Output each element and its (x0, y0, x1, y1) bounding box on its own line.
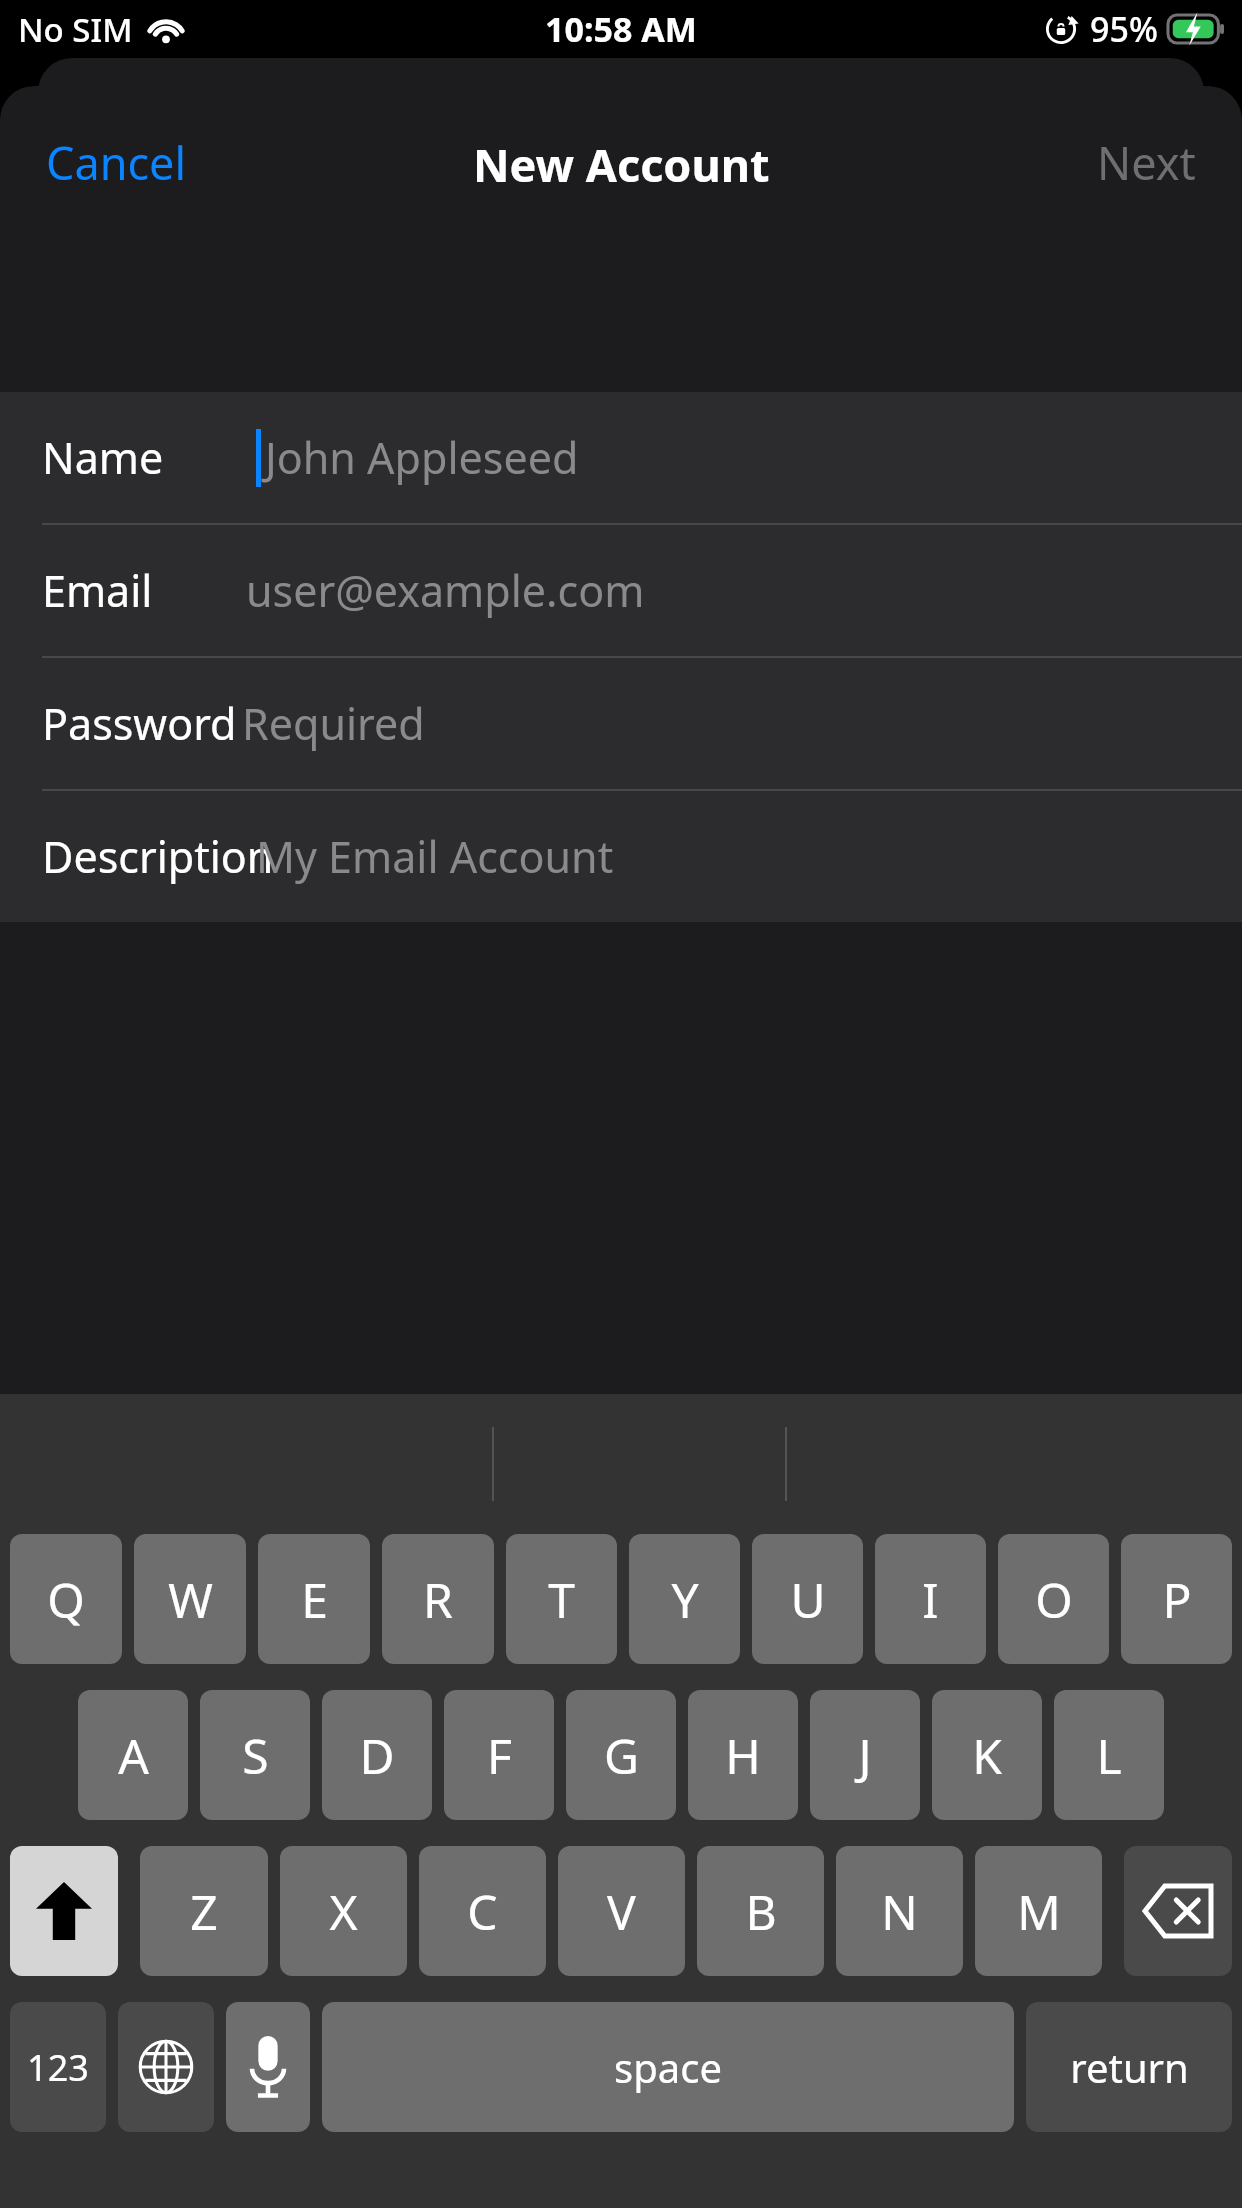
staticText: Z (190, 1879, 218, 1944)
button[interactable]: W (134, 1534, 246, 1664)
staticText: My Email Account (256, 827, 614, 886)
staticText: No SIM (18, 7, 133, 52)
staticText: T (548, 1567, 575, 1632)
button[interactable]: C (419, 1846, 546, 1976)
button[interactable]: Shift (10, 1846, 118, 1976)
button[interactable]: Backspace (1124, 1846, 1232, 1976)
staticText: M (1017, 1879, 1061, 1944)
staticText: Cancel (46, 132, 187, 193)
staticText: H (725, 1723, 761, 1788)
staticText: C (467, 1879, 498, 1944)
staticText: G (604, 1723, 639, 1788)
staticText: F (487, 1723, 512, 1788)
staticText: K (972, 1723, 1002, 1788)
staticText: Required (242, 694, 425, 753)
button[interactable]: Name (0, 392, 1242, 523)
staticText: 123 (27, 2043, 89, 2092)
button[interactable]: B (697, 1846, 824, 1976)
staticText: Name (42, 428, 164, 487)
button[interactable]: K (932, 1690, 1042, 1820)
button[interactable]: R (382, 1534, 494, 1664)
staticText: O (1035, 1567, 1073, 1632)
staticText: N (881, 1879, 918, 1944)
staticText: Email (42, 561, 153, 620)
button[interactable]: F (444, 1690, 554, 1820)
staticText: Q (47, 1567, 85, 1632)
button[interactable]: X (280, 1846, 407, 1976)
button[interactable]: Email (0, 525, 1242, 656)
button[interactable]: Cancel (0, 112, 233, 212)
button[interactable]: U (752, 1534, 863, 1664)
staticText: New Account (473, 134, 770, 195)
button[interactable]: G (566, 1690, 676, 1820)
staticText: Password (42, 694, 237, 753)
staticText: D (359, 1723, 395, 1788)
button[interactable]: A (78, 1690, 188, 1820)
staticText: return (1070, 2040, 1189, 2094)
staticText: I (922, 1567, 939, 1632)
staticText: W (168, 1567, 213, 1632)
button[interactable]: Description (0, 791, 1242, 922)
button[interactable]: Next keyboard (118, 2002, 214, 2132)
button[interactable]: P (1121, 1534, 1232, 1664)
button[interactable]: Q (10, 1534, 122, 1664)
staticText: space (614, 2040, 722, 2094)
staticText: B (745, 1879, 777, 1944)
button[interactable]: H (688, 1690, 798, 1820)
staticText: P (1162, 1567, 1192, 1632)
staticText: Next (1097, 132, 1196, 193)
staticText: J (858, 1723, 872, 1788)
button[interactable]: Next (1051, 112, 1242, 212)
button[interactable]: E (258, 1534, 370, 1664)
staticText: U (790, 1567, 826, 1632)
button[interactable]: N (836, 1846, 963, 1976)
button[interactable]: Z (140, 1846, 268, 1976)
button[interactable]: S (200, 1690, 310, 1820)
button[interactable]: T (506, 1534, 617, 1664)
staticText: X (329, 1879, 358, 1944)
button[interactable]: J (810, 1690, 920, 1820)
button[interactable]: I (875, 1534, 986, 1664)
staticText: Description (42, 827, 274, 886)
button[interactable]: Dictation (226, 2002, 310, 2132)
button[interactable]: Y (629, 1534, 740, 1664)
staticText: S (242, 1723, 269, 1788)
button[interactable]: Password (0, 658, 1242, 789)
staticText: E (301, 1567, 328, 1632)
button[interactable]: V (558, 1846, 685, 1976)
staticText: V (607, 1879, 636, 1944)
staticText: A (118, 1723, 149, 1788)
staticText: R (423, 1567, 453, 1632)
button[interactable]: O (998, 1534, 1109, 1664)
staticText: user@example.com (246, 561, 645, 620)
button[interactable]: 123 (10, 2002, 106, 2132)
staticText: L (1096, 1723, 1122, 1788)
button[interactable]: D (322, 1690, 432, 1820)
staticText: John Appleseed (265, 428, 579, 487)
button[interactable]: return (1026, 2002, 1232, 2132)
button[interactable]: M (975, 1846, 1102, 1976)
button[interactable]: L (1054, 1690, 1164, 1820)
staticText: Y (671, 1567, 699, 1632)
button[interactable]: space (322, 2002, 1014, 2132)
staticText: 10:58 AM (545, 6, 697, 52)
staticText: 95% (1090, 6, 1158, 52)
